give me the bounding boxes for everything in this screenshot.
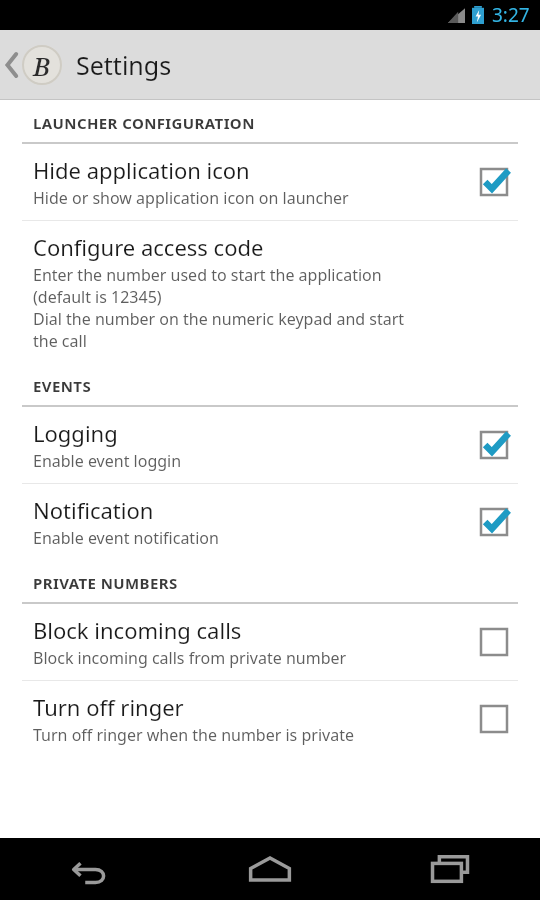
staticText: (default is 12345) [33, 286, 162, 308]
button[interactable]: Configure access code [0, 221, 540, 363]
staticText: B [33, 48, 51, 83]
staticText: Notification [33, 495, 154, 525]
staticText: Hide application icon [33, 155, 250, 185]
staticText: Dial the number on the numeric keypad an… [33, 308, 405, 330]
button[interactable]: Logging [470, 421, 518, 469]
staticText: Logging [33, 418, 118, 448]
staticText: Turn off ringer [33, 692, 184, 722]
button[interactable]: Block incoming calls [470, 618, 518, 666]
button[interactable]: Hide application icon [470, 158, 518, 206]
button[interactable]: Back [0, 37, 66, 93]
button[interactable]: Hide application icon [0, 144, 540, 220]
button[interactable]: Home [180, 838, 360, 900]
staticText: Settings [76, 48, 172, 82]
staticText: the call [33, 330, 87, 352]
button[interactable]: Back [0, 838, 180, 900]
staticText: LAUNCHER CONFIGURATION [33, 113, 255, 133]
staticText: Configure access code [33, 232, 264, 262]
staticText: EVENTS [33, 376, 92, 396]
staticText: 3:27 [492, 2, 530, 28]
staticText: Enable event notification [33, 527, 219, 549]
staticText: Block incoming calls from private number [33, 647, 347, 669]
button[interactable]: Turn off ringer [470, 695, 518, 743]
staticText: Hide or show application icon on launche… [33, 187, 349, 209]
button[interactable]: Logging [0, 407, 540, 483]
button[interactable]: Block incoming calls [0, 604, 540, 680]
button[interactable]: Notification [470, 498, 518, 546]
staticText: PRIVATE NUMBERS [33, 573, 178, 593]
staticText: Enter the number used to start the appli… [33, 264, 382, 286]
button[interactable]: Recent apps [360, 838, 540, 900]
staticText: Turn off ringer when the number is priva… [33, 724, 354, 746]
button[interactable]: Turn off ringer [0, 681, 540, 757]
staticText: Block incoming calls [33, 615, 242, 645]
button[interactable]: Notification [0, 484, 540, 560]
staticText: Enable event loggin [33, 450, 182, 472]
